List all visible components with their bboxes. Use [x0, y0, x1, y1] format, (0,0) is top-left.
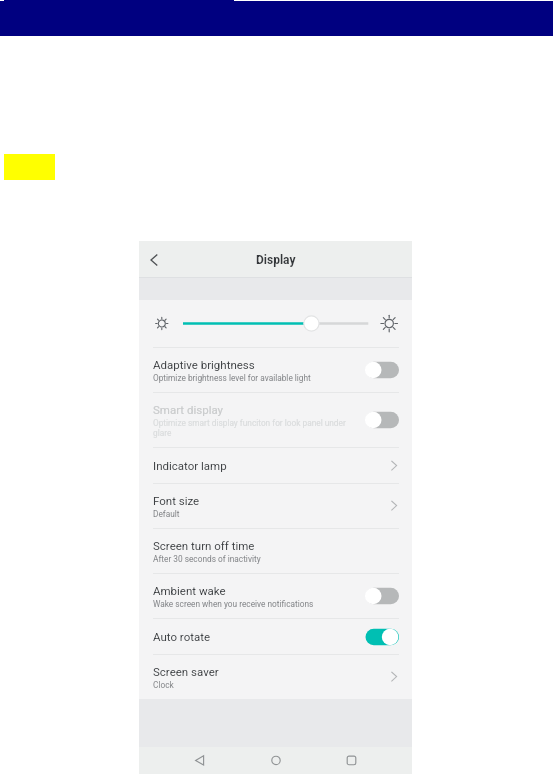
button[interactable]: Screen turn off time [139, 529, 412, 573]
staticText: Font size [153, 494, 200, 507]
button[interactable]: Ambient wake [139, 574, 412, 618]
staticText: Optimize brightness level for available … [153, 373, 311, 383]
staticText: After 30 seconds of inactivity [153, 554, 261, 564]
button[interactable]: Toggle on [364, 627, 399, 647]
staticText: Smart display [153, 403, 224, 416]
button[interactable]: Back [139, 241, 169, 277]
staticText: Wake screen when you receive notificatio… [153, 599, 314, 609]
staticText: Ambient wake [153, 584, 226, 597]
button[interactable]: Toggle off [364, 586, 399, 606]
staticText: Screen turn off time [153, 539, 255, 552]
staticText: Adaptive brightness [153, 358, 255, 371]
button[interactable]: Recents [332, 747, 370, 774]
staticText: Default [153, 509, 180, 519]
staticText: Indicator lamp [153, 459, 227, 472]
staticText: Screen saver [153, 665, 219, 678]
button[interactable]: Indicator lamp [139, 448, 412, 483]
button[interactable]: Auto rotate [139, 619, 412, 654]
button[interactable]: Screen saver [139, 655, 412, 699]
staticText: Clock [153, 680, 174, 690]
button[interactable]: Home [257, 747, 295, 774]
staticText: Optimize smart display funciton for look… [153, 418, 349, 438]
button[interactable]: Toggle off [364, 360, 399, 380]
staticText: Auto rotate [153, 630, 211, 643]
button[interactable]: Font size [139, 484, 412, 528]
button[interactable]: Smart display [139, 393, 412, 447]
button[interactable]: Toggle off [364, 410, 399, 430]
staticText: Display [256, 253, 296, 267]
button[interactable]: Adaptive brightness [139, 348, 412, 392]
button[interactable]: Back [181, 747, 219, 774]
